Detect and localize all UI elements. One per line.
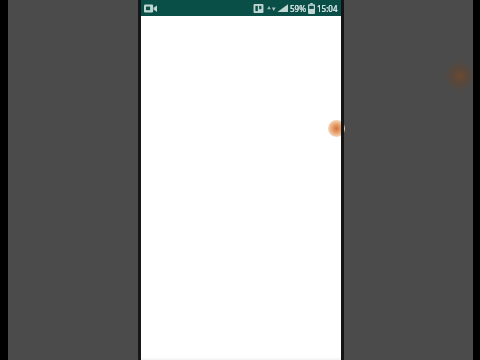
button[interactable]	[141, 16, 341, 360]
staticText: 15:04	[317, 3, 338, 14]
other: Screen recording	[144, 3, 157, 14]
other: Storage	[253, 3, 264, 14]
staticText: 59%	[290, 3, 306, 14]
button[interactable]: Contact avatar	[328, 120, 345, 137]
other: Battery	[308, 3, 315, 14]
other: Mobile data activity	[267, 3, 276, 13]
other: Signal strength	[277, 3, 288, 13]
